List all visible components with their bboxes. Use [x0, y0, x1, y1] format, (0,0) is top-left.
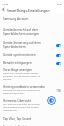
staticText: Geräte-Steuerung auf dem Sperrbildschirm — [3, 41, 54, 49]
staticText: SmartThings-Einstellungen — [7, 8, 50, 12]
button[interactable]: Geräteübersicht auf dem Sperrbildschirm … — [0, 21, 64, 36]
button[interactable]: Samsung Account — [0, 17, 64, 21]
button[interactable]: Back — [0, 6, 7, 13]
staticText: Erweiterte Funktionen — [3, 125, 35, 126]
staticText: Geräteübersicht auf dem Sperrbildschirm … — [3, 28, 61, 36]
staticText: können. — [3, 78, 12, 81]
button[interactable]: Heimnetz-Übersicht — [0, 95, 64, 112]
staticText: Tap Vibe, Tap Sound — [3, 117, 32, 121]
staticText: Aktionen vor. — [3, 109, 17, 112]
staticText: Im Laufe der Zeit lernt das System — [3, 103, 40, 106]
staticText: Benachrichtigungen — [3, 61, 32, 65]
button[interactable]: Toggle — [56, 89, 61, 92]
button[interactable]: Toggle — [56, 44, 61, 47]
staticText: Tipps zur Nutzung deiner Geräte — [3, 72, 39, 75]
button[interactable]: Erweiterte Funktionen — [0, 121, 64, 126]
staticText: Geräte synchronisieren — [3, 53, 36, 57]
staticText: Lässt dieses Gerät im Hintergrund — [3, 89, 40, 92]
button[interactable]: Hintergrunddaten verwenden — [0, 81, 64, 95]
staticText: Samsung Account — [3, 17, 29, 21]
staticText: 14:23 — [2, 2, 9, 5]
staticText: Vorschläge anzeigen — [3, 68, 33, 72]
button[interactable]: Geräte-Steuerung auf dem Sperrbildschirm — [0, 36, 64, 49]
staticText: Hintergrunddaten verwenden — [3, 85, 46, 89]
button[interactable]: Geräte synchronisieren — [0, 49, 64, 57]
staticText: Daten austauschen. — [3, 92, 25, 95]
staticText: 87% — [57, 2, 62, 5]
button[interactable]: Focused toggle — [47, 96, 56, 105]
staticText: anzeigen, um sie besser nutzen zu — [3, 75, 41, 78]
button[interactable]: Toggle — [56, 62, 61, 65]
button[interactable]: Tap Vibe, Tap Sound — [0, 112, 64, 121]
staticText: deine Gewohnheiten und schlägt — [3, 106, 39, 109]
button[interactable]: Benachrichtigungen — [0, 57, 64, 65]
button[interactable]: Vorschläge anzeigen — [0, 65, 64, 81]
staticText: Heimnetz-Übersicht — [3, 99, 32, 103]
button[interactable]: Toggle — [56, 54, 61, 57]
